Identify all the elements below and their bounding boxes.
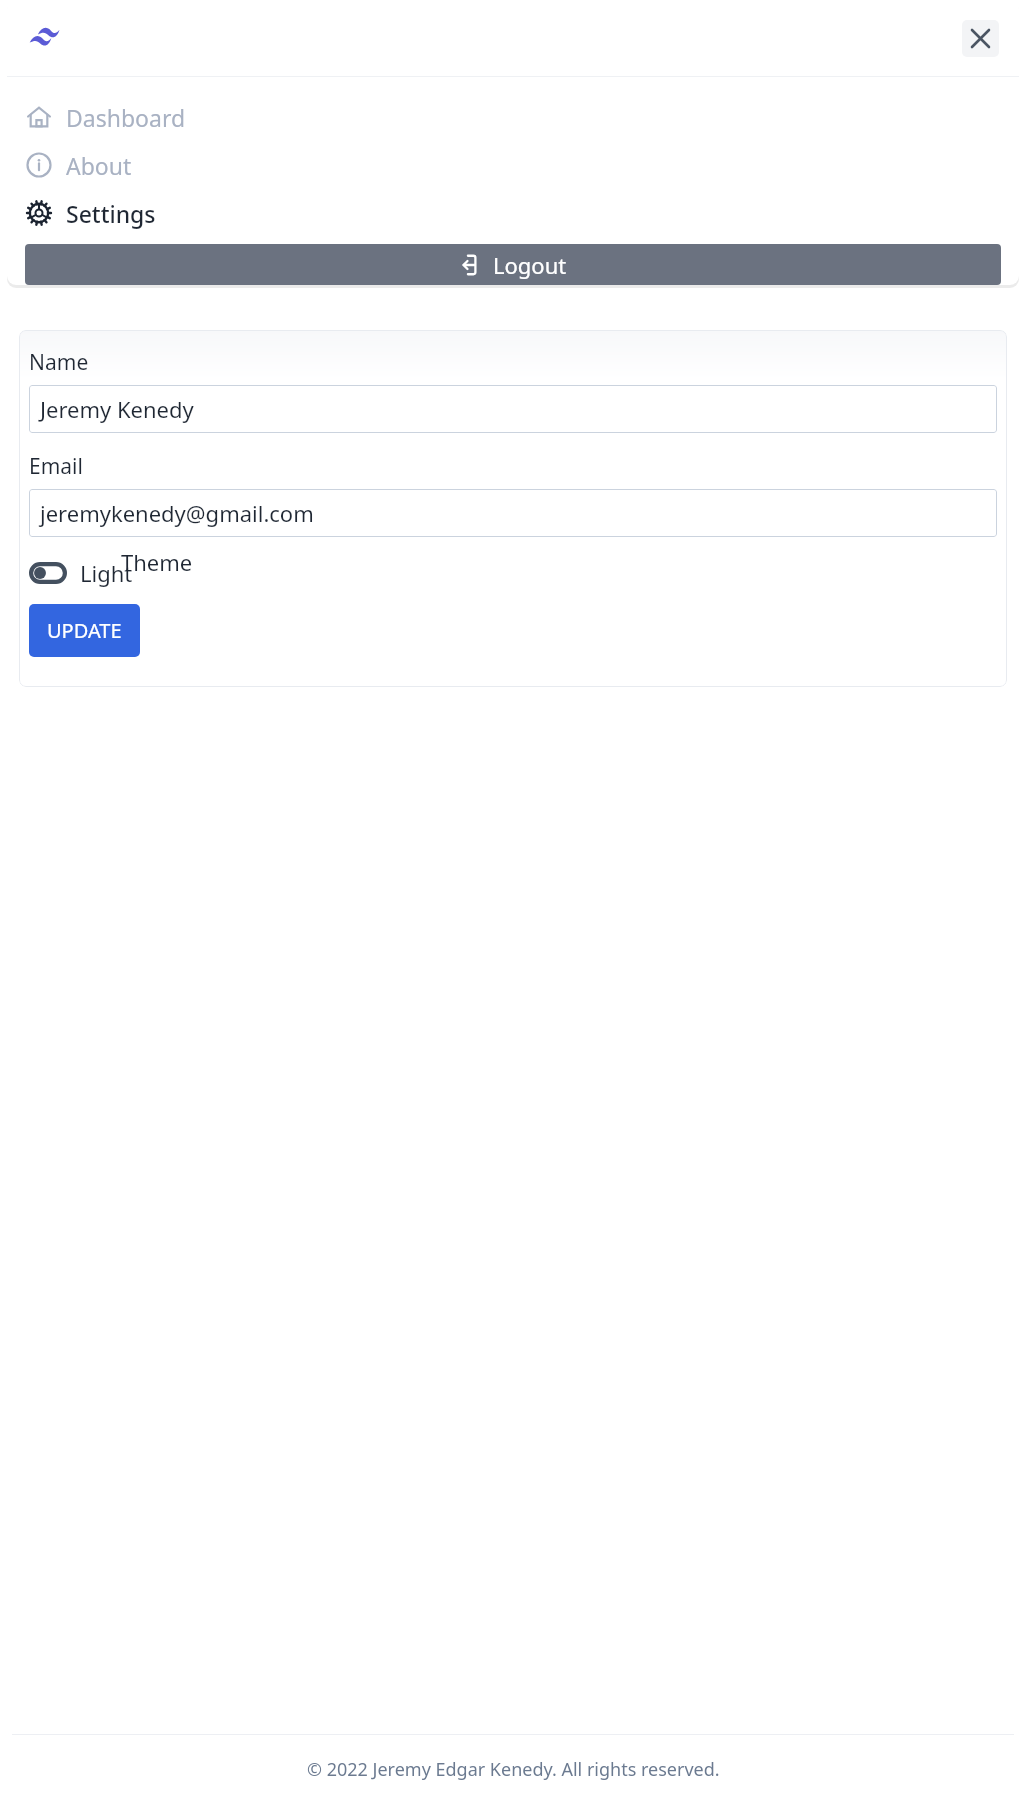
staticText: Settings bbox=[66, 198, 156, 229]
staticText: © 2022 Jeremy Edgar Kenedy. All rights r… bbox=[307, 1757, 720, 1782]
button[interactable]: UPDATE bbox=[29, 604, 140, 657]
button[interactable]: Settings bbox=[7, 189, 1019, 237]
button[interactable]: Jeremy Kenedy bbox=[29, 385, 997, 433]
staticText: Logout bbox=[493, 250, 567, 280]
staticText: Theme bbox=[121, 547, 193, 577]
staticText: UPDATE bbox=[47, 617, 122, 644]
staticText: jeremykenedy@gmail.com bbox=[40, 498, 314, 528]
staticText: Email bbox=[29, 452, 83, 481]
staticText: Light bbox=[80, 558, 133, 588]
button[interactable]: Close menu bbox=[962, 20, 999, 57]
staticText: Name bbox=[29, 348, 89, 377]
staticText: About bbox=[66, 150, 132, 181]
button[interactable]: About bbox=[7, 141, 1019, 189]
staticText: Dashboard bbox=[66, 102, 186, 133]
button[interactable]: jeremykenedy@gmail.com bbox=[29, 489, 997, 537]
button[interactable]: Dashboard bbox=[7, 93, 1019, 141]
button[interactable]: Logout bbox=[25, 244, 1001, 285]
button[interactable]: Light bbox=[29, 558, 193, 588]
staticText: Jeremy Kenedy bbox=[40, 394, 194, 424]
